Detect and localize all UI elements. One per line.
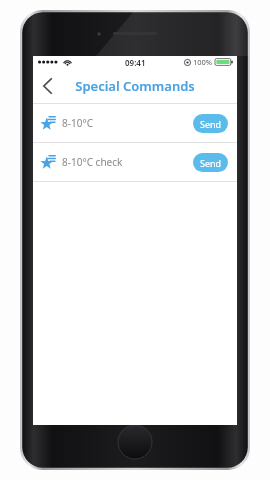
staticText: 09:41 — [125, 57, 146, 68]
button[interactable]: Back — [33, 68, 61, 104]
button[interactable]: 8-10°C check — [33, 143, 237, 181]
staticText: Special Commands — [75, 77, 195, 95]
staticText: Send — [200, 118, 222, 130]
staticText: Send — [200, 157, 222, 169]
staticText: 8-10°C — [62, 116, 193, 130]
staticText: 8-10°C check — [62, 155, 193, 169]
button[interactable]: Home — [118, 425, 152, 459]
staticText: 100% — [193, 57, 213, 67]
button[interactable]: Send — [193, 114, 228, 133]
button[interactable]: Send — [193, 153, 228, 172]
button[interactable]: 8-10°C — [33, 104, 237, 142]
